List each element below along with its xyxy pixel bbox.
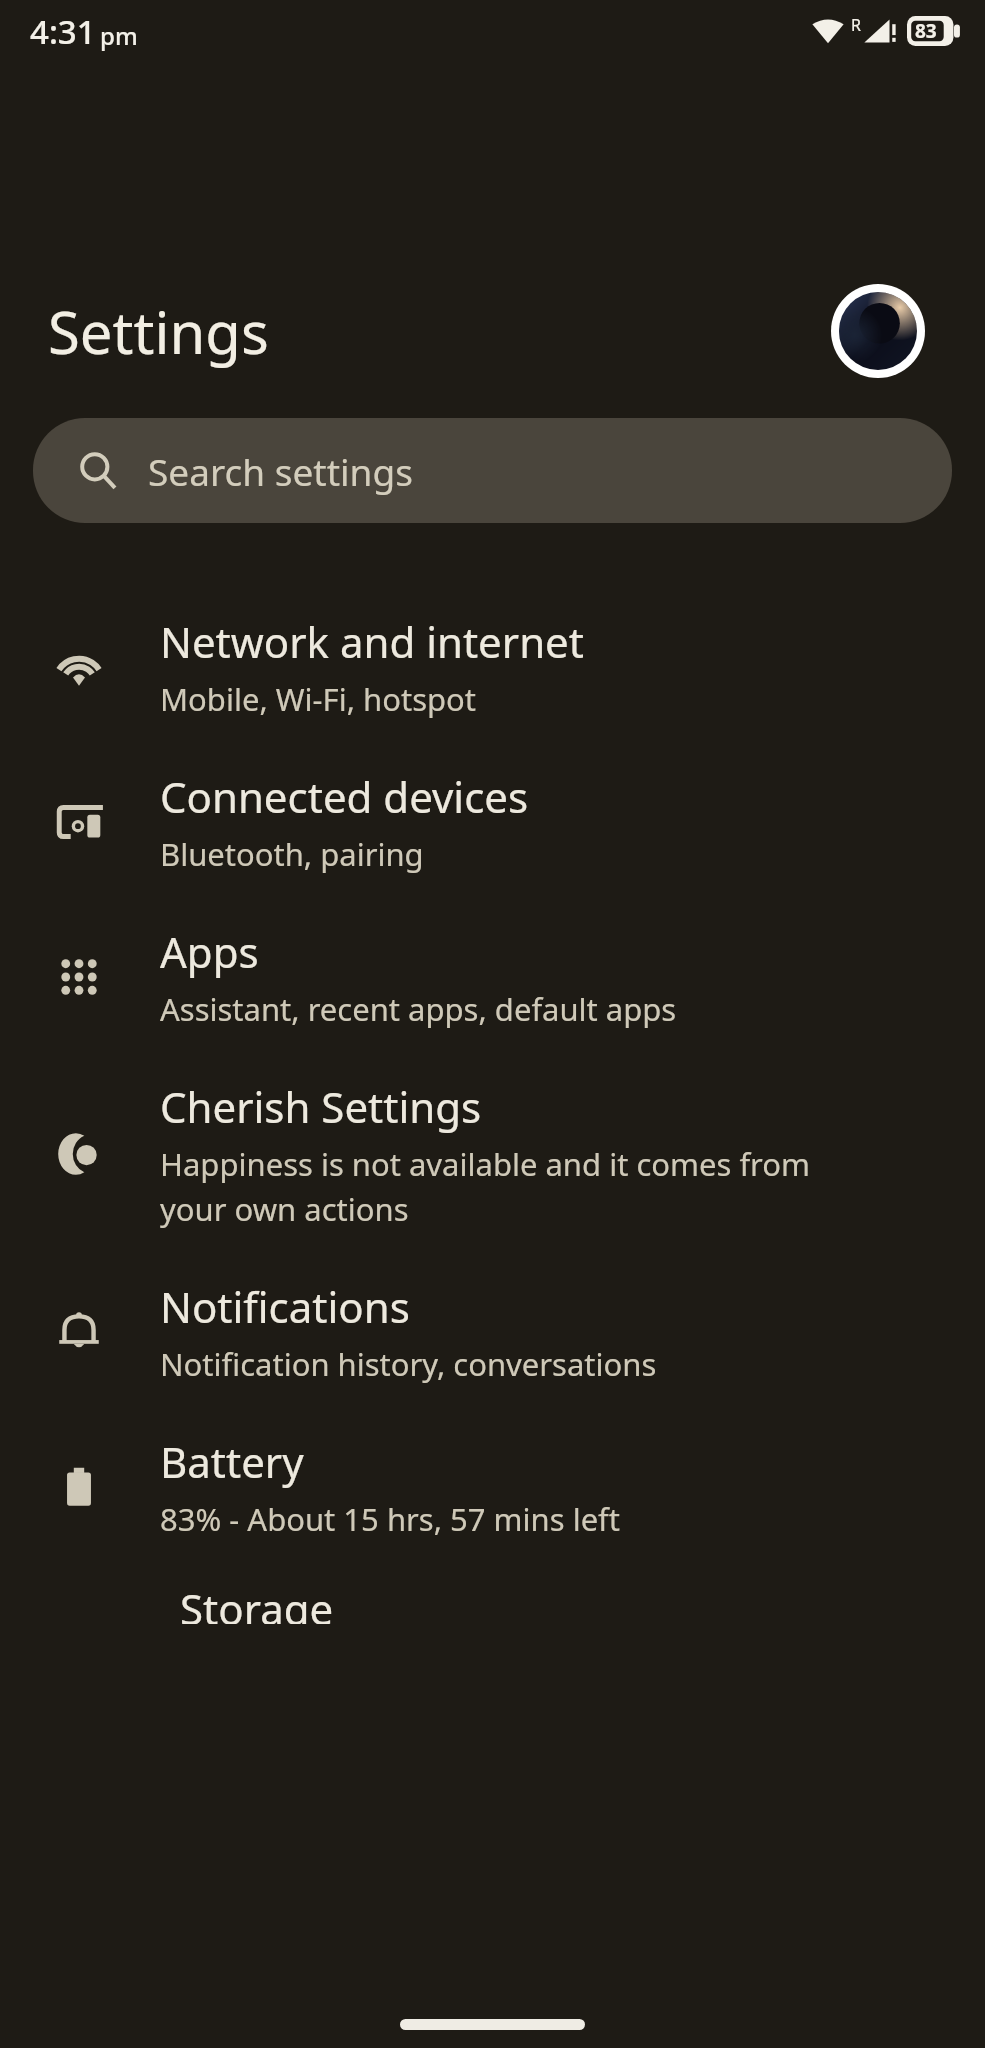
staticText: Bluetooth, pairing	[160, 833, 424, 875]
staticText: 4:31	[30, 9, 96, 54]
button[interactable]: Search settings	[33, 418, 952, 523]
staticText: Cherish Settings	[160, 1078, 482, 1135]
staticText: Settings	[48, 292, 269, 371]
staticText: Network and internet	[160, 613, 584, 670]
staticText: 83% - About 15 hrs, 57 mins left	[160, 1498, 620, 1540]
button[interactable]: Battery	[0, 1409, 985, 1564]
staticText: Notifications	[160, 1278, 410, 1335]
staticText: 83	[915, 18, 937, 44]
staticText: Connected devices	[160, 768, 529, 825]
button[interactable]: Apps	[0, 899, 985, 1054]
staticText: Assistant, recent apps, default apps	[160, 988, 677, 1030]
staticText: R	[851, 14, 861, 36]
staticText: Search settings	[148, 446, 413, 496]
staticText: Notification history, conversations	[160, 1343, 657, 1385]
button[interactable]: Storage	[0, 1564, 985, 1624]
button[interactable]: Cherish Settings	[0, 1054, 985, 1254]
button[interactable]: Network and internet	[0, 589, 985, 744]
staticText: Mobile, Wi-Fi, hotspot	[160, 678, 477, 720]
button[interactable]: Notifications	[0, 1254, 985, 1409]
staticText: Apps	[160, 923, 259, 980]
staticText: Battery	[160, 1433, 304, 1490]
staticText: Happiness is not available and it comes …	[160, 1143, 811, 1230]
button[interactable]: Connected devices	[0, 744, 985, 899]
staticText: pm	[100, 19, 138, 52]
button[interactable]: Account avatar	[831, 284, 925, 378]
staticText: Storage	[180, 1580, 334, 1624]
